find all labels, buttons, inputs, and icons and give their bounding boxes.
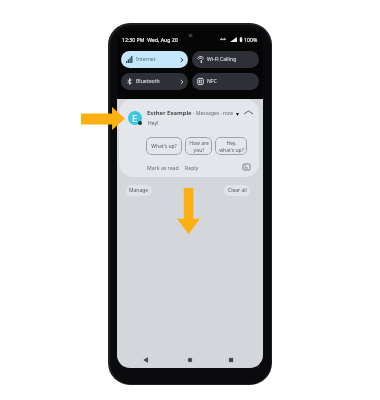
button[interactable]: Reply xyxy=(185,164,199,171)
button[interactable]: Recent apps xyxy=(224,353,238,367)
button[interactable]: Open keyboard xyxy=(242,163,250,171)
button[interactable]: What's up? xyxy=(146,137,182,155)
button[interactable]: Manage xyxy=(126,185,152,196)
button[interactable]: Clear all xyxy=(224,185,250,196)
button[interactable]: How are you? xyxy=(185,137,212,155)
button[interactable]: E xyxy=(119,99,259,177)
staticText: E xyxy=(132,112,138,125)
button[interactable]: Mark as read xyxy=(147,164,179,171)
button[interactable]: Hey, what's up? xyxy=(215,137,247,155)
button[interactable]: Home xyxy=(183,353,197,367)
staticText: 100% xyxy=(244,36,258,43)
staticText: · Messages · now xyxy=(192,110,234,117)
staticText: Clear all xyxy=(228,187,247,194)
staticText: Hey, what's up? xyxy=(219,140,244,153)
staticText: Internet xyxy=(136,56,156,63)
staticText: 12:30 PM Wed, Aug 20 xyxy=(122,36,178,43)
staticText: NFC xyxy=(207,78,217,85)
staticText: Esther Example xyxy=(147,109,192,117)
staticText: Bluetooth xyxy=(136,78,160,85)
staticText: Hey! xyxy=(148,120,159,127)
button[interactable]: Collapse notification xyxy=(243,108,254,117)
button[interactable]: Bluetooth xyxy=(121,73,188,90)
button[interactable]: Internet xyxy=(121,51,188,68)
button[interactable]: Wi-Fi Calling xyxy=(192,51,259,68)
button[interactable]: NFC xyxy=(192,73,259,90)
staticText: How are you? xyxy=(189,140,209,153)
staticText: What's up? xyxy=(151,143,177,150)
staticText: Manage xyxy=(129,187,149,194)
button[interactable]: Back xyxy=(139,353,153,367)
staticText: Wi-Fi Calling xyxy=(207,56,237,63)
